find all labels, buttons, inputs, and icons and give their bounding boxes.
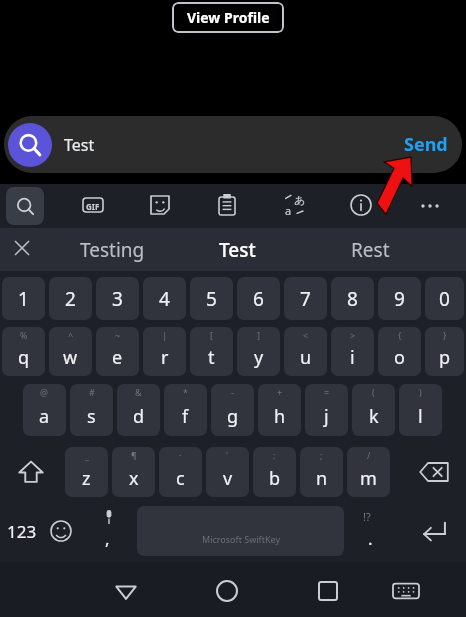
button[interactable]: ' xyxy=(206,447,249,497)
button[interactable]: : xyxy=(253,447,296,497)
button[interactable]: _ xyxy=(65,447,108,497)
staticText: % xyxy=(20,329,28,341)
button[interactable]: Backspace xyxy=(404,445,464,499)
button[interactable]: + xyxy=(258,384,301,436)
button[interactable]: < xyxy=(284,327,327,376)
button[interactable]: [ xyxy=(190,327,233,376)
staticText: a xyxy=(39,404,50,429)
staticText: z xyxy=(82,466,91,491)
staticText: _ xyxy=(85,449,89,461)
button[interactable]: Emoji xyxy=(40,505,82,557)
staticText: ' xyxy=(226,449,229,461)
button[interactable]: | xyxy=(143,327,186,376)
button[interactable]: = xyxy=(305,384,348,436)
button[interactable]: Search xyxy=(6,187,44,225)
staticText: k xyxy=(369,404,379,429)
staticText: b xyxy=(269,466,281,491)
button[interactable]: @ xyxy=(23,384,66,436)
button[interactable]: 9 xyxy=(378,277,421,320)
button[interactable]: More options xyxy=(414,190,446,222)
staticText: 0 xyxy=(439,286,450,312)
staticText: : xyxy=(273,449,276,461)
button[interactable]: Microsoft SwiftKey xyxy=(137,506,344,556)
button[interactable]: ¶ xyxy=(112,447,155,497)
button[interactable]: Shift xyxy=(2,445,60,499)
staticText: Testing xyxy=(80,237,145,263)
staticText: 9 xyxy=(394,286,405,312)
button[interactable]: & xyxy=(117,384,160,436)
staticText: e xyxy=(112,345,123,370)
staticText: Test xyxy=(219,237,256,263)
button[interactable]: Search xyxy=(8,123,52,167)
button[interactable]: Translate xyxy=(278,189,310,221)
staticText: u xyxy=(300,345,312,370)
staticText: Rest xyxy=(351,237,390,263)
staticText: + xyxy=(277,386,283,398)
staticText: ~ xyxy=(115,329,121,341)
staticText: l xyxy=(418,404,423,429)
button[interactable]: ^ xyxy=(49,327,92,376)
staticText: # xyxy=(89,386,95,398)
button[interactable]: 6 xyxy=(237,277,280,320)
button[interactable]: # xyxy=(70,384,113,436)
button[interactable]: Home xyxy=(206,570,248,612)
button[interactable]: * xyxy=(164,384,207,436)
button[interactable]: Send xyxy=(404,116,448,173)
staticText: Microsoft SwiftKey xyxy=(202,533,280,545)
button[interactable]: 2 xyxy=(49,277,92,320)
button[interactable]: Clipboard xyxy=(211,189,243,221)
button[interactable]: View Profile xyxy=(172,2,284,33)
staticText: Send xyxy=(404,132,448,157)
staticText: 5 xyxy=(206,286,217,312)
staticText: ^ xyxy=(68,329,74,341)
button[interactable]: Expand xyxy=(2,228,42,268)
button[interactable]: ; xyxy=(300,447,343,497)
button[interactable]: { xyxy=(378,327,421,376)
button[interactable]: Testing xyxy=(42,228,182,271)
button[interactable]: 0 xyxy=(425,277,464,320)
button[interactable]: % xyxy=(2,327,45,376)
button[interactable]: 1 xyxy=(2,277,45,320)
button[interactable]: Recent apps xyxy=(307,570,349,612)
button[interactable]: 4 xyxy=(143,277,186,320)
button[interactable]: 123 xyxy=(0,505,44,557)
staticText: < xyxy=(303,329,309,341)
button[interactable]: GIF xyxy=(77,189,109,221)
staticText: 1 xyxy=(18,286,29,312)
staticText: * xyxy=(183,386,188,398)
button[interactable]: Back xyxy=(105,570,147,612)
button[interactable]: - xyxy=(211,384,254,436)
button[interactable]: Stickers xyxy=(144,189,176,221)
button[interactable]: ] xyxy=(237,327,280,376)
button[interactable]: 8 xyxy=(331,277,374,320)
button[interactable]: Comma and voice input xyxy=(88,505,132,557)
staticText: View Profile xyxy=(187,8,270,27)
staticText: ( xyxy=(372,386,375,398)
button[interactable]: Hide keyboard xyxy=(385,570,427,612)
staticText: i xyxy=(350,345,355,370)
button[interactable]: Rest xyxy=(300,228,440,271)
button[interactable]: 5 xyxy=(190,277,233,320)
button[interactable]: Test xyxy=(182,228,292,271)
button[interactable]: · xyxy=(159,447,202,497)
staticText: 3 xyxy=(112,286,123,312)
button[interactable]: 3 xyxy=(96,277,139,320)
button[interactable]: ) xyxy=(399,384,442,436)
button[interactable]: > xyxy=(331,327,374,376)
staticText: = xyxy=(324,386,330,398)
button[interactable]: } xyxy=(425,327,464,376)
staticText: t xyxy=(208,345,215,370)
button[interactable]: ( xyxy=(352,384,395,436)
button[interactable]: Enter xyxy=(406,505,462,557)
button[interactable]: !? xyxy=(350,505,394,557)
button[interactable]: ~ xyxy=(96,327,139,376)
button[interactable]: 7 xyxy=(284,277,327,320)
staticText: @ xyxy=(40,386,49,398)
staticText: d xyxy=(133,404,145,429)
staticText: v xyxy=(223,466,233,491)
staticText: ] xyxy=(257,329,260,341)
button[interactable]: Info xyxy=(345,189,377,221)
staticText: 6 xyxy=(253,286,264,312)
button[interactable]: / xyxy=(347,447,390,497)
staticText: ) xyxy=(419,386,422,398)
